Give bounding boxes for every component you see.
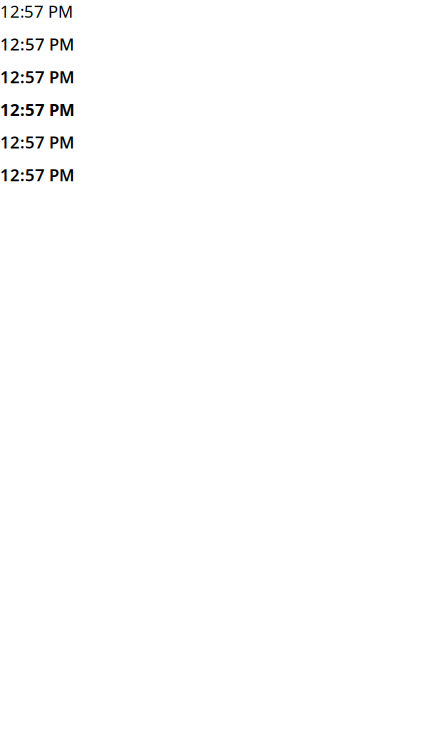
staticText: 12:57 PM: [0, 0, 73, 23]
staticText: 12:57 PM: [0, 163, 74, 186]
staticText: 12:57 PM: [0, 131, 74, 153]
staticText: 12:57 PM: [0, 98, 75, 121]
staticText: 12:57 PM: [0, 65, 74, 88]
staticText: 12:57 PM: [0, 33, 74, 55]
